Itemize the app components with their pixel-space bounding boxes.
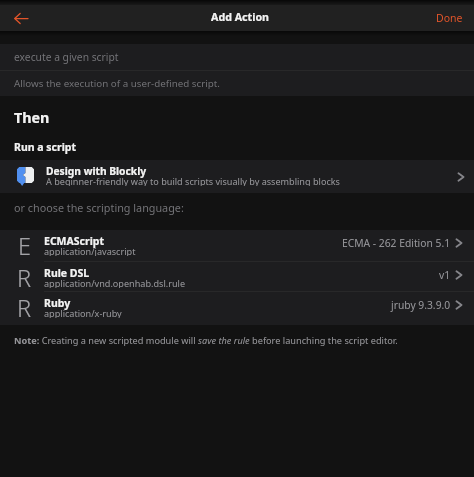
staticText: Run a script — [14, 140, 77, 154]
staticText: execute a given script — [14, 50, 119, 64]
staticText: Ruby — [44, 296, 71, 310]
staticText: Allows the execution of a user-defined s… — [14, 77, 220, 90]
staticText: application/javascript — [44, 245, 136, 256]
staticText: jruby 9.3.9.0 — [391, 298, 451, 312]
staticText: v1 — [439, 268, 451, 282]
button[interactable]: R — [0, 292, 474, 325]
button[interactable]: Design with Blockly — [0, 160, 474, 193]
staticText: or choose the scripting language: — [14, 200, 184, 215]
staticText: Add Action — [211, 10, 270, 25]
staticText: R — [17, 292, 32, 324]
staticText: application/vnd.openhab.dsl.rule — [44, 277, 186, 288]
staticText: E — [18, 230, 31, 261]
staticText: application/x-ruby — [44, 307, 122, 318]
staticText: Then — [14, 108, 50, 127]
button[interactable]: E — [0, 230, 474, 262]
staticText: Rule DSL — [44, 266, 90, 280]
staticText: A beginner-friendly way to build scripts… — [46, 175, 340, 186]
staticText: ECMA - 262 Edition 5.1 — [342, 236, 451, 250]
staticText: R — [17, 262, 32, 291]
staticText: Done — [436, 11, 463, 23]
staticText: ECMAScript — [44, 234, 105, 248]
button[interactable]: Done — [425, 4, 474, 30]
button[interactable]: Back — [8, 5, 34, 31]
button[interactable]: R — [0, 262, 474, 292]
staticText: Design with Blockly — [46, 164, 147, 178]
staticText: Note: Creating a new scripted module wil… — [14, 334, 398, 347]
